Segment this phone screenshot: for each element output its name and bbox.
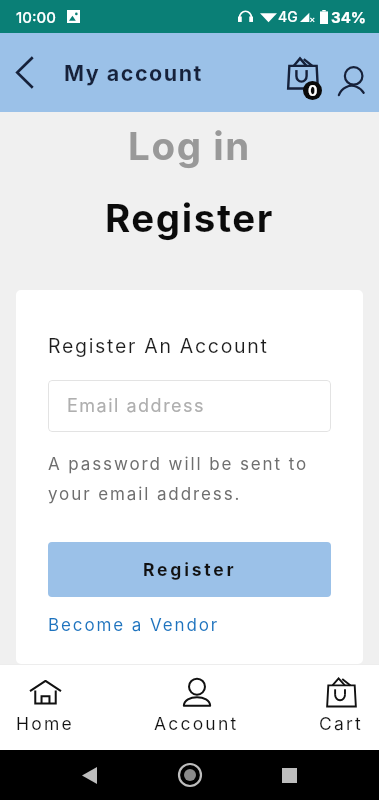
other: Home bbox=[179, 764, 201, 786]
staticText: Email address bbox=[67, 395, 206, 417]
button[interactable]: Back bbox=[16, 33, 48, 112]
button[interactable]: Log in bbox=[0, 123, 379, 170]
staticText: My account bbox=[64, 60, 203, 86]
staticText: Register An Account bbox=[48, 334, 269, 358]
button[interactable]: My account bbox=[330, 52, 372, 100]
staticText: Account bbox=[154, 713, 239, 734]
staticText: 10:00 bbox=[16, 8, 56, 26]
button[interactable]: Become a Vendor bbox=[48, 615, 220, 636]
staticText: 4G bbox=[278, 8, 298, 25]
staticText: Home bbox=[16, 713, 74, 734]
button[interactable]: Home bbox=[16, 664, 74, 750]
button[interactable]: Cart bbox=[319, 664, 363, 750]
button[interactable]: Account bbox=[154, 664, 239, 750]
staticText: Register bbox=[143, 559, 237, 580]
staticText: Cart bbox=[319, 713, 363, 734]
button[interactable]: Register bbox=[0, 195, 379, 242]
staticText: 34% bbox=[331, 8, 367, 26]
button[interactable]: Email address bbox=[48, 380, 331, 432]
button[interactable]: Register bbox=[48, 542, 331, 597]
other: Back bbox=[82, 767, 97, 784]
button[interactable]: Cart bbox=[280, 48, 326, 106]
staticText: 0 bbox=[308, 82, 318, 99]
staticText: A password will be sent to your email ad… bbox=[48, 454, 331, 504]
